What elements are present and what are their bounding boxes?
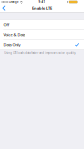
button[interactable]: Back xyxy=(0,4,9,12)
staticText: Off xyxy=(3,22,9,27)
staticText: Enable LTE xyxy=(32,5,52,11)
staticText: Orange xyxy=(9,0,19,4)
button[interactable]: Off xyxy=(0,20,84,30)
staticText: Data Only xyxy=(3,42,20,47)
staticText: 9:41 xyxy=(38,0,45,4)
staticText: Voice & Data xyxy=(3,32,25,37)
button[interactable]: Voice & Data xyxy=(0,30,84,40)
staticText: Using LTE loads data faster and improves… xyxy=(4,51,76,55)
button[interactable]: Data Only xyxy=(0,40,84,50)
